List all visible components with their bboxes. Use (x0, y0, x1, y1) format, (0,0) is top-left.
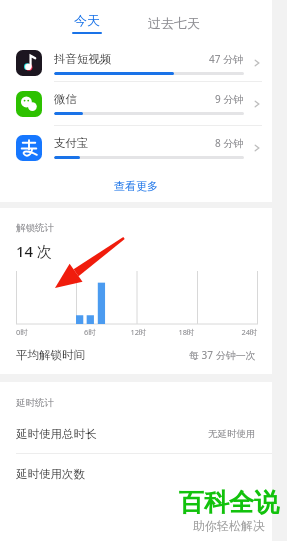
staticText: 8 分钟 (215, 136, 244, 150)
staticText: 百科全说 (179, 487, 279, 518)
staticText: 抖音短视频 (54, 52, 112, 66)
button[interactable]: 查看更多 (0, 169, 272, 202)
button[interactable]: 延时使用次数 (0, 461, 272, 487)
staticText: 9 分钟 (215, 92, 244, 106)
staticText: 18时 (178, 327, 195, 337)
staticText: 12时 (130, 327, 147, 337)
staticText: 延时使用次数 (16, 467, 85, 481)
staticText: 平均解锁时间 (16, 348, 85, 362)
staticText: 延时统计 (16, 397, 54, 409)
staticText: 14 次 (16, 241, 53, 261)
staticText: 查看更多 (114, 179, 158, 193)
staticText: 无延时使用 (208, 428, 256, 440)
button[interactable]: 今天 (66, 12, 108, 34)
button[interactable]: 延时使用总时长 (0, 421, 272, 447)
button[interactable]: 支付宝 (0, 126, 272, 169)
staticText: 24时 (241, 327, 258, 337)
staticText: 支付宝 (54, 136, 89, 150)
staticText: 解锁统计 (16, 222, 54, 234)
staticText: 助你轻松解决 (193, 518, 265, 533)
staticText: 0时 (16, 327, 28, 337)
staticText: 微信 (54, 92, 77, 106)
staticText: 6时 (84, 327, 96, 337)
button[interactable]: 抖音短视频 (0, 45, 272, 81)
staticText: 延时使用总时长 (16, 427, 97, 441)
button[interactable]: 过去七天 (142, 11, 206, 35)
staticText: 过去七天 (148, 15, 200, 31)
button[interactable]: 平均解锁时间 (0, 340, 272, 370)
button[interactable]: 微信 (0, 82, 272, 125)
staticText: 每 37 分钟一次 (189, 348, 256, 362)
staticText: 今天 (74, 12, 100, 28)
staticText: 47 分钟 (209, 52, 244, 66)
